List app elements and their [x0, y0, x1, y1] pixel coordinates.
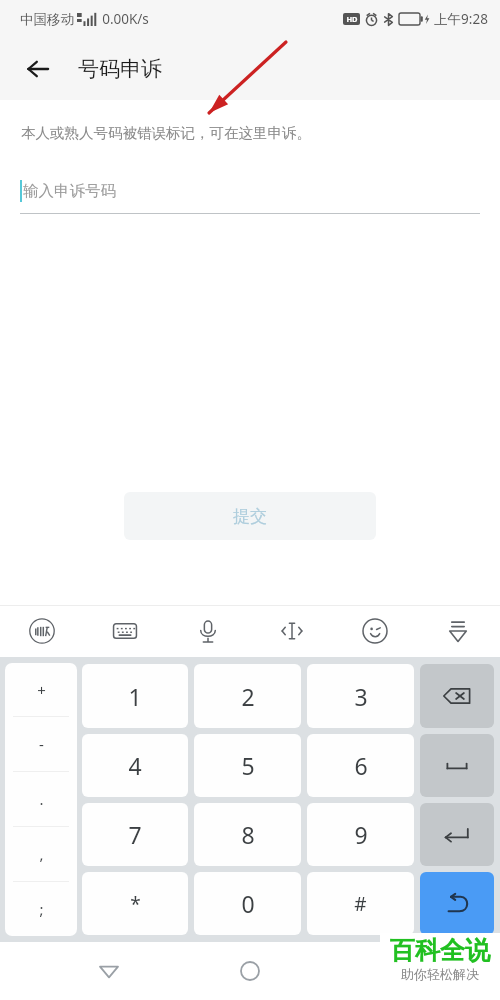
button[interactable]: ,: [5, 827, 77, 881]
staticText: ;: [39, 899, 44, 919]
staticText: *: [130, 891, 141, 917]
button[interactable]: 键盘: [99, 605, 151, 657]
staticText: -: [39, 734, 44, 754]
staticText: 9: [354, 819, 368, 850]
button[interactable]: 最近任务: [359, 942, 423, 1000]
staticText: +: [37, 680, 46, 700]
staticText: 6: [354, 750, 368, 781]
staticText: 3: [354, 681, 368, 712]
staticText: 5: [241, 750, 255, 781]
button[interactable]: .: [5, 772, 77, 826]
button[interactable]: 输入申诉号码: [20, 168, 480, 214]
button[interactable]: *: [82, 872, 188, 935]
button[interactable]: #: [307, 872, 414, 935]
staticText: 中国移动: [20, 11, 74, 28]
staticText: HD: [346, 14, 358, 24]
button[interactable]: 4: [82, 734, 188, 797]
staticText: 提交: [233, 506, 267, 527]
button[interactable]: 删除: [420, 664, 494, 728]
staticText: 1: [128, 681, 142, 712]
button[interactable]: -: [5, 717, 77, 771]
button[interactable]: 5: [194, 734, 301, 797]
staticText: 7: [128, 819, 142, 850]
staticText: ,: [39, 844, 44, 864]
button[interactable]: 提交: [124, 492, 376, 540]
button[interactable]: 空格: [420, 734, 494, 797]
button[interactable]: 输入法: [16, 605, 68, 657]
staticText: 0.00K/s: [102, 10, 149, 28]
button[interactable]: ;: [5, 882, 77, 936]
button[interactable]: 收起键盘: [420, 872, 494, 935]
staticText: .: [39, 789, 44, 809]
button[interactable]: 主屏幕: [218, 942, 282, 1000]
button[interactable]: 返回: [12, 43, 64, 95]
button[interactable]: 6: [307, 734, 414, 797]
button[interactable]: 9: [307, 803, 414, 866]
staticText: 上午9:28: [434, 10, 488, 28]
button[interactable]: 返回: [77, 942, 141, 1000]
staticText: 8: [241, 819, 255, 850]
staticText: 本人或熟人号码被错误标记，可在这里申诉。: [21, 124, 311, 142]
staticText: 输入申诉号码: [23, 181, 116, 201]
button[interactable]: 1: [82, 664, 188, 728]
staticText: #: [354, 891, 367, 917]
staticText: 助你轻松解决: [401, 966, 479, 982]
staticText: 0: [241, 888, 255, 919]
button[interactable]: 回车: [420, 803, 494, 866]
staticText: 2: [241, 681, 255, 712]
button[interactable]: 3: [307, 664, 414, 728]
staticText: 百科全说: [390, 935, 490, 966]
button[interactable]: 8: [194, 803, 301, 866]
staticText: 号码申诉: [78, 56, 162, 82]
button[interactable]: 移动光标: [266, 605, 318, 657]
button[interactable]: +: [5, 663, 77, 716]
button[interactable]: 语音输入: [182, 605, 234, 657]
button[interactable]: 0: [194, 872, 301, 935]
button[interactable]: 表情: [349, 605, 401, 657]
button[interactable]: 2: [194, 664, 301, 728]
staticText: 4: [128, 750, 142, 781]
button[interactable]: 7: [82, 803, 188, 866]
button[interactable]: 收起键盘: [432, 605, 484, 657]
